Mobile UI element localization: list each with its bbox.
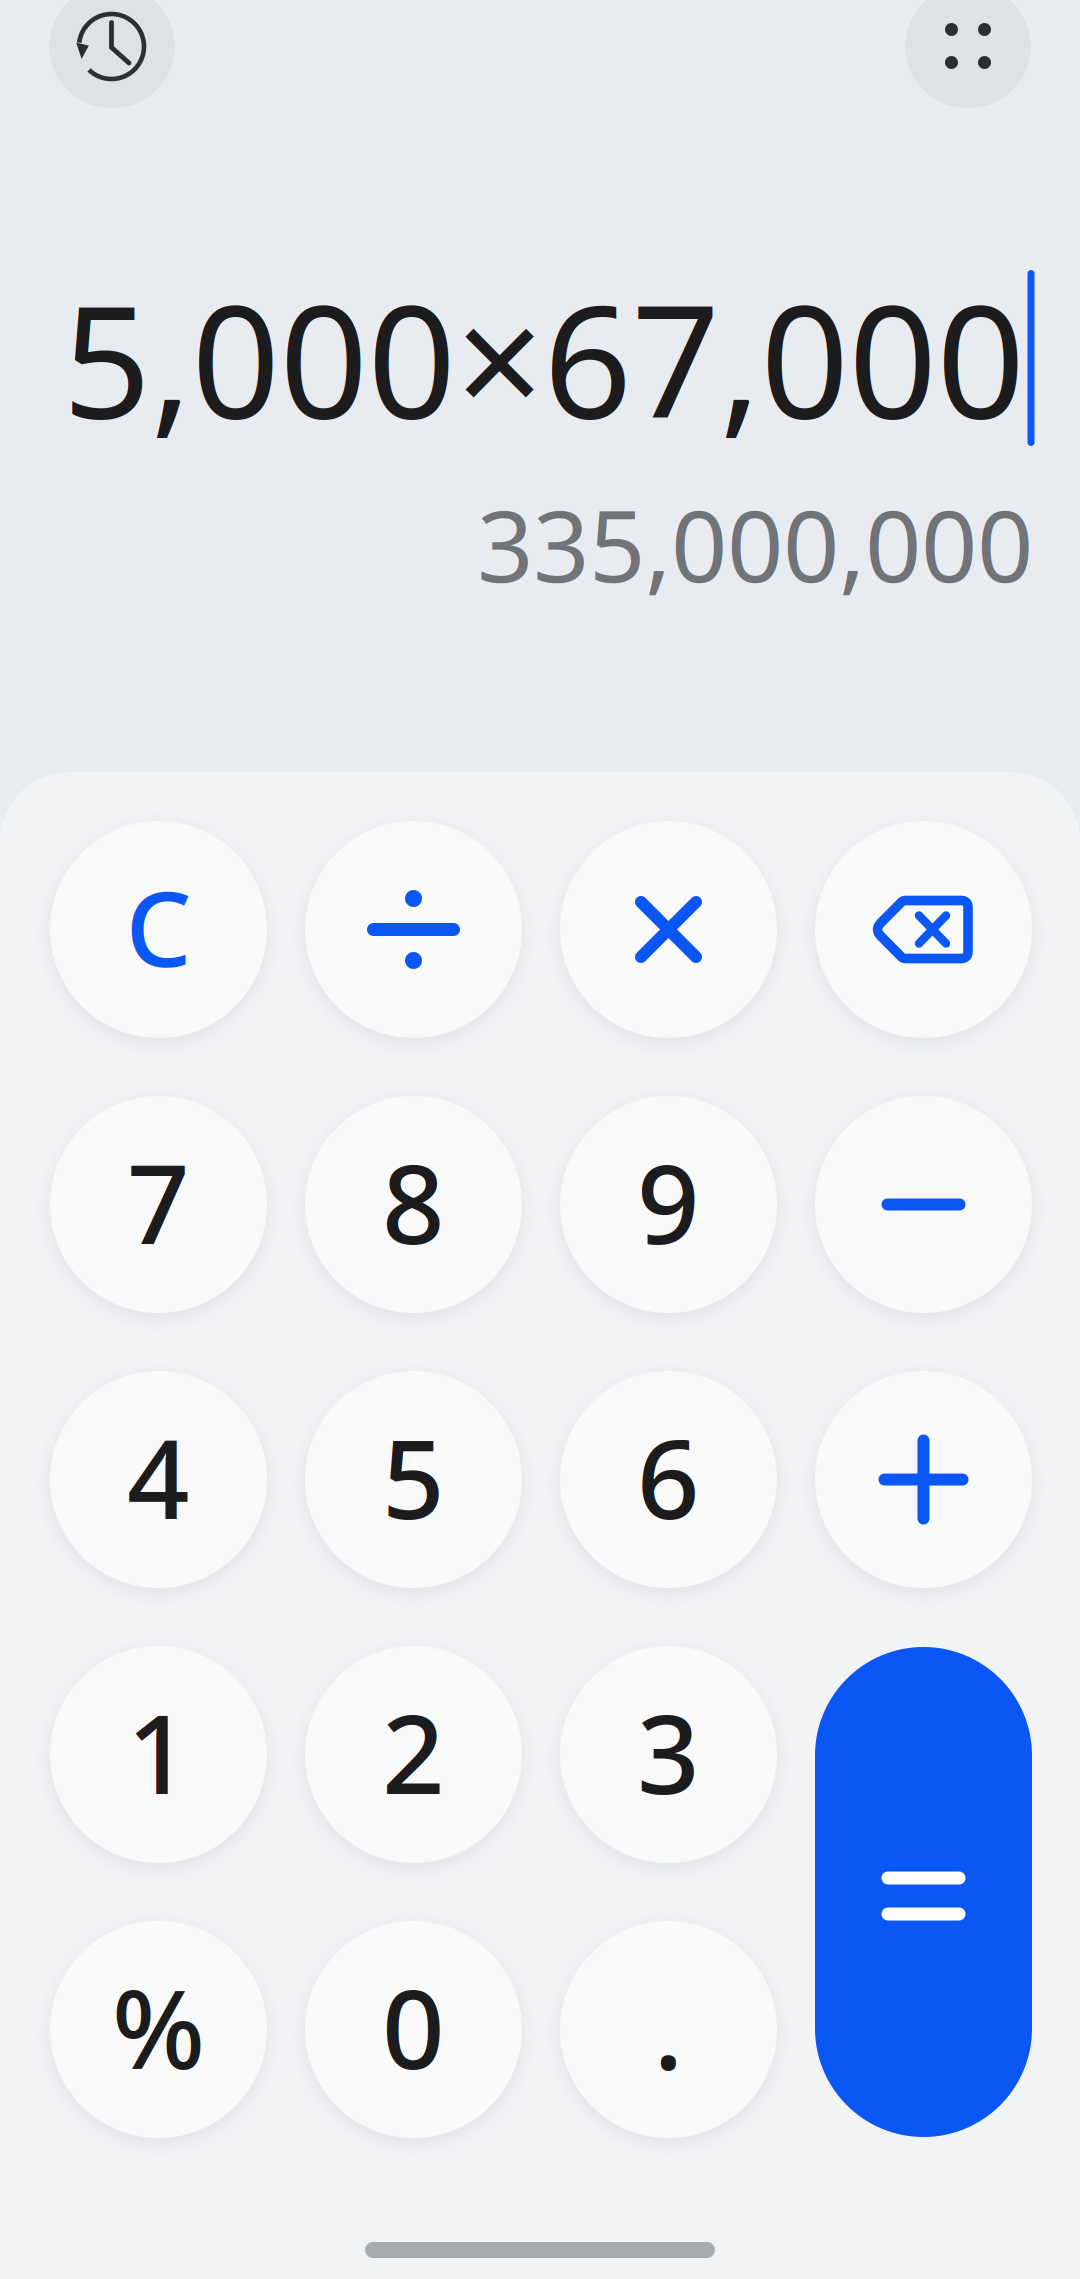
button[interactable]: 7 <box>50 1096 267 1313</box>
button[interactable]: 3 <box>560 1646 777 1863</box>
staticText: 5 <box>382 1404 445 1549</box>
staticText: 5,000×67,000 <box>62 255 1024 461</box>
button[interactable]: Delete <box>815 821 1032 1038</box>
staticText: 7 <box>127 1129 190 1274</box>
staticText: 0 <box>382 1954 445 2099</box>
button[interactable]: Minus <box>815 1096 1032 1313</box>
button[interactable]: 2 <box>305 1646 522 1863</box>
button[interactable]: 6 <box>560 1371 777 1588</box>
button[interactable]: . <box>560 1921 777 2138</box>
button[interactable]: 8 <box>305 1096 522 1313</box>
button[interactable]: More <box>905 0 1030 108</box>
button[interactable]: Multiply <box>560 821 777 1038</box>
button[interactable]: Equals <box>815 1647 1032 2137</box>
button[interactable]: Divide <box>305 821 522 1038</box>
button[interactable]: 5 <box>305 1371 522 1588</box>
button[interactable]: 1 <box>50 1646 267 1863</box>
button[interactable]: Plus <box>815 1371 1032 1588</box>
button[interactable]: 0 <box>305 1921 522 2138</box>
staticText: 8 <box>382 1129 445 1274</box>
button[interactable]: C <box>50 821 267 1038</box>
button[interactable]: 4 <box>50 1371 267 1588</box>
staticText: . <box>653 1954 683 2099</box>
staticText: 9 <box>637 1129 700 1274</box>
staticText: 2 <box>382 1679 445 1824</box>
button[interactable]: 9 <box>560 1096 777 1313</box>
staticText: C <box>125 857 191 995</box>
staticText: 6 <box>637 1404 700 1549</box>
staticText: % <box>112 1954 205 2099</box>
button[interactable]: % <box>50 1921 267 2138</box>
staticText: 4 <box>127 1404 190 1549</box>
staticText: 335,000,000 <box>477 478 1033 609</box>
button[interactable]: History <box>49 0 174 108</box>
staticText: 3 <box>637 1679 700 1824</box>
staticText: 1 <box>127 1679 190 1824</box>
